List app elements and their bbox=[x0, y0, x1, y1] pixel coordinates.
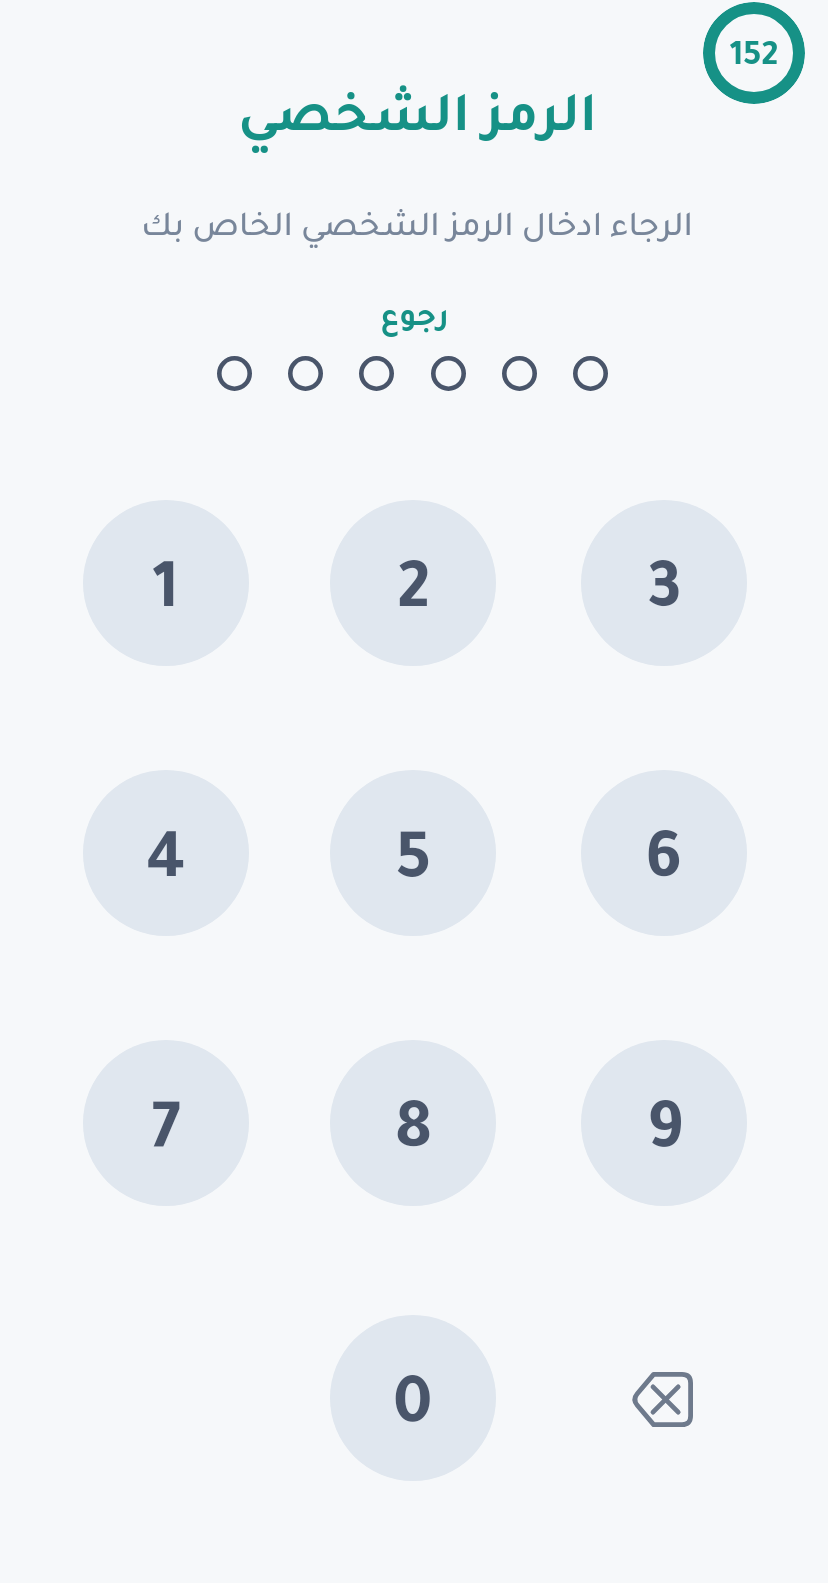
button[interactable]: 1 bbox=[83, 500, 249, 666]
button[interactable]: 0 bbox=[330, 1315, 496, 1481]
button[interactable]: 3 bbox=[581, 500, 747, 666]
staticText: الرمز الشخصي bbox=[238, 94, 597, 150]
staticText: 7 bbox=[151, 1101, 181, 1171]
staticText: الرجاء ادخال الرمز الشخصي الخاص بك bbox=[141, 212, 693, 247]
button[interactable]: 9 bbox=[581, 1040, 747, 1206]
button[interactable]: Delete bbox=[581, 1315, 747, 1481]
button[interactable]: Remaining time 152 bbox=[703, 2, 805, 104]
button[interactable]: 2 bbox=[330, 500, 496, 666]
staticText: رجوع bbox=[380, 304, 449, 337]
button[interactable]: 5 bbox=[330, 770, 496, 936]
button[interactable]: 8 bbox=[330, 1040, 496, 1206]
staticText: 5 bbox=[396, 831, 431, 901]
staticText: 2 bbox=[397, 561, 430, 631]
staticText: 8 bbox=[395, 1101, 432, 1171]
staticText: 9 bbox=[646, 1101, 683, 1171]
button[interactable]: 4 bbox=[83, 770, 249, 936]
staticText: 152 bbox=[730, 41, 778, 77]
staticText: 1 bbox=[153, 561, 179, 631]
button[interactable]: 7 bbox=[83, 1040, 249, 1206]
staticText: 4 bbox=[146, 831, 186, 901]
button[interactable]: رجوع bbox=[344, 290, 484, 350]
staticText: 6 bbox=[646, 831, 683, 901]
staticText: 0 bbox=[393, 1376, 433, 1446]
button[interactable]: 6 bbox=[581, 770, 747, 936]
staticText: 3 bbox=[646, 561, 682, 631]
